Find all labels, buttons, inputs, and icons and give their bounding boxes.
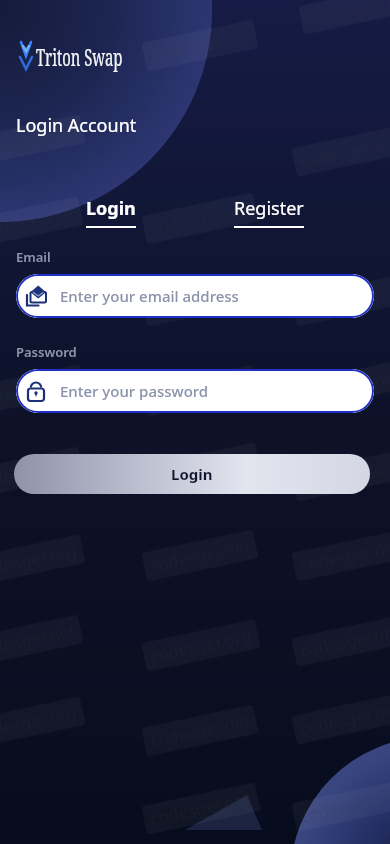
staticText: codesger.net: [148, 369, 252, 412]
staticText: codesger.org: [148, 786, 254, 830]
staticText: codesger.net: [0, 619, 77, 662]
staticText: codesger.net: [0, 201, 77, 244]
staticText: Triton Swap: [36, 40, 123, 72]
staticText: codesger.net: [298, 279, 390, 322]
button[interactable]: Register: [234, 196, 304, 228]
button[interactable]: Enter your password: [16, 369, 374, 413]
staticText: codesger.net: [298, 364, 390, 407]
staticText: Login Account: [16, 113, 137, 138]
staticText: codesger.org: [0, 538, 79, 582]
staticText: codesger.org: [298, 453, 390, 497]
button[interactable]: Enter your email address: [16, 274, 374, 318]
staticText: codesger.net: [148, 709, 252, 752]
staticText: codesger.org: [148, 623, 254, 667]
staticText: codesger.net: [0, 451, 77, 494]
staticText: codesger.org: [298, 783, 390, 827]
staticText: codesger.org: [0, 118, 79, 162]
button[interactable]: Login: [14, 454, 370, 494]
staticText: codesger.net: [298, 534, 390, 577]
button[interactable]: Login: [86, 196, 136, 228]
staticText: codesger.net: [148, 197, 252, 240]
staticText: Login: [171, 464, 213, 484]
staticText: codesger.org: [0, 368, 79, 412]
staticText: codesger.org: [148, 446, 254, 490]
staticText: Enter your password: [60, 381, 209, 401]
staticText: codesger.org: [305, 0, 390, 30]
staticText: codesger.org: [298, 128, 390, 172]
staticText: codesger.net: [148, 24, 252, 67]
staticText: Email: [16, 248, 51, 266]
staticText: codesger.net: [298, 697, 390, 740]
staticText: codesger.net: [148, 534, 252, 577]
staticText: codesger.org: [0, 700, 79, 744]
staticText: codesger.org: [298, 618, 390, 662]
staticText: Register: [234, 196, 304, 221]
staticText: Password: [16, 343, 77, 361]
staticText: Login: [86, 196, 136, 221]
staticText: codesger.org: [148, 278, 254, 322]
staticText: Enter your email address: [60, 286, 239, 306]
